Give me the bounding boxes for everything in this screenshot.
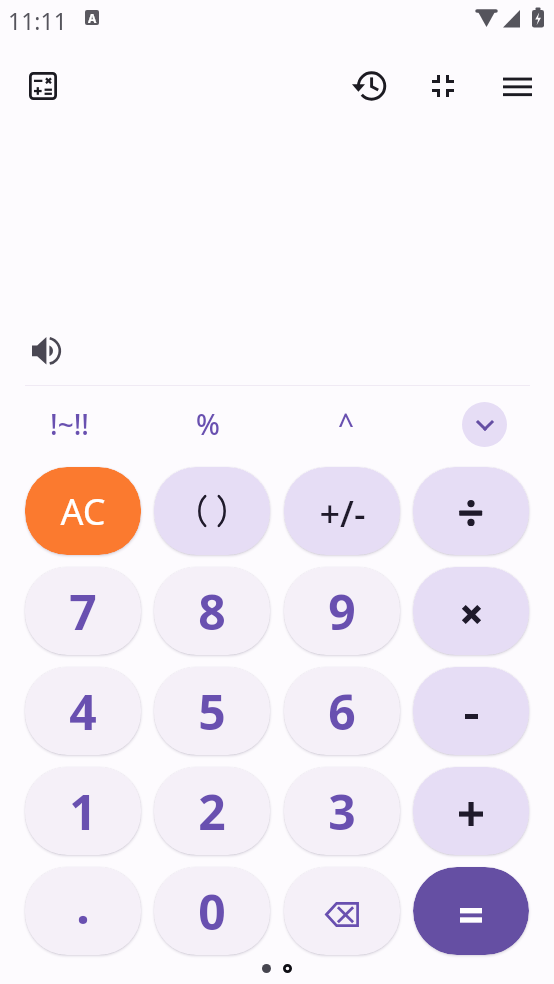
button[interactable]: Parentheses: [154, 467, 270, 555]
button[interactable]: !~!!: [24, 385, 114, 463]
staticText: +/-: [319, 489, 366, 538]
button[interactable]: 3: [284, 767, 400, 855]
button[interactable]: 9: [284, 567, 400, 655]
button[interactable]: +/-: [284, 467, 400, 555]
button[interactable]: %: [163, 385, 253, 463]
staticText: !~!!: [50, 405, 89, 443]
button[interactable]: 7: [25, 567, 141, 655]
button[interactable]: History: [345, 62, 393, 110]
button[interactable]: Collapse: [419, 62, 467, 110]
button[interactable]: 4: [25, 667, 141, 755]
staticText: 0: [198, 879, 226, 944]
button[interactable]: Sound: [26, 331, 66, 371]
button[interactable]: .: [25, 867, 141, 955]
staticText: 2: [198, 779, 226, 844]
button[interactable]: 8: [154, 567, 270, 655]
staticText: AC: [60, 487, 106, 536]
button[interactable]: Backspace: [284, 867, 400, 955]
staticText: 9: [328, 579, 356, 644]
button[interactable]: Divide: [413, 467, 529, 555]
button[interactable]: ^: [301, 385, 391, 463]
staticText: 8: [198, 579, 226, 644]
staticText: 6: [328, 679, 356, 744]
button[interactable]: 1: [25, 767, 141, 855]
staticText: 7: [69, 579, 97, 644]
button[interactable]: 0: [154, 867, 270, 955]
button[interactable]: Multiply: [413, 567, 529, 655]
staticText: 3: [328, 779, 356, 844]
button[interactable]: AC: [25, 467, 141, 555]
button[interactable]: Minus: [413, 667, 529, 755]
staticText: 1: [69, 779, 97, 844]
button[interactable]: 6: [284, 667, 400, 755]
staticText: 11:11: [8, 5, 67, 36]
button[interactable]: Plus: [413, 767, 529, 855]
staticText: 4: [69, 679, 97, 744]
staticText: A: [88, 10, 97, 25]
staticText: %: [196, 405, 220, 443]
button[interactable]: Menu: [493, 62, 541, 110]
button[interactable]: 2: [154, 767, 270, 855]
button[interactable]: Calculator: [19, 62, 67, 110]
staticText: ^: [338, 405, 355, 443]
staticText: 5: [198, 679, 226, 744]
button[interactable]: Equals: [413, 867, 529, 955]
button[interactable]: 5: [154, 667, 270, 755]
button[interactable]: Expand: [462, 402, 507, 447]
staticText: .: [76, 873, 90, 938]
